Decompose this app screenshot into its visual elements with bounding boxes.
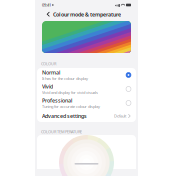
staticText: Vivid and display for vivid visuals bbox=[42, 90, 98, 95]
staticText: Default bbox=[114, 113, 126, 119]
staticText: Normal bbox=[42, 69, 60, 76]
button[interactable]: Advanced settings bbox=[37, 110, 136, 122]
staticText: Tuning for accurate colour display bbox=[42, 104, 100, 109]
staticText: It has for the colour display bbox=[42, 76, 88, 81]
staticText: Colour mode & temperature bbox=[53, 11, 121, 18]
staticText: Vivid bbox=[42, 83, 53, 90]
button[interactable]: Back bbox=[44, 10, 53, 19]
button[interactable]: Professional bbox=[37, 96, 136, 110]
button[interactable]: Normal bbox=[37, 68, 136, 82]
staticText: COLOUR TEMPERATURE bbox=[41, 129, 82, 134]
staticText: Advanced settings bbox=[42, 112, 87, 120]
button[interactable]: Vivid bbox=[37, 82, 136, 96]
staticText: COLOUR bbox=[41, 61, 56, 66]
staticText: 09:41 bbox=[42, 2, 51, 8]
staticText: Professional bbox=[42, 97, 72, 104]
